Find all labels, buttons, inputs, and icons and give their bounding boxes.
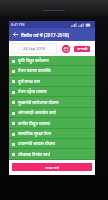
- button[interactable]: प्रधानमंत्री आवास योजना: [9, 139, 95, 149]
- button[interactable]: सामाजिक सुरक्षा पेंशन: [9, 129, 95, 139]
- button[interactable]: 24-Sep-2018: [11, 43, 57, 54]
- staticText: पेंशन उद्देश्य प्रकरण: [18, 89, 47, 95]
- staticText: मुख्यमंत्री स्वरोजगार योजना: [18, 100, 59, 106]
- button[interactable]: शौचालय निर्माण कार्य: [9, 149, 95, 160]
- button[interactable]: वापस जाएँ: [12, 163, 92, 171]
- staticText: सामाजिक सुरक्षा पेंशन: [18, 131, 52, 137]
- button[interactable]: पेंशन उद्देश्य प्रकरण: [9, 87, 95, 97]
- staticText: जानकारी: [77, 47, 88, 51]
- staticText: शौचालय निर्माण कार्य: [18, 152, 50, 158]
- button[interactable]: Back: [9, 28, 21, 41]
- staticText: आंगनवाड़ी आधारित कार्य: [18, 110, 56, 116]
- button[interactable]: जानकारी: [74, 46, 90, 52]
- staticText: वापस जाएँ: [45, 165, 59, 170]
- staticText: पेंशन प्रकरण उपलब्धि: [18, 68, 51, 74]
- button[interactable]: पूर्ण स्वच्छ ग्राम: [9, 76, 95, 87]
- button[interactable]: कृषि विद्युत कनेक्शन: [9, 56, 95, 66]
- staticText: 24-Sep-2018: [23, 46, 46, 51]
- staticText: वित्तीय वर्ष में (2017-2018): [21, 32, 70, 38]
- staticText: ग्रामीण विद्युत व्यवस्था: [18, 121, 51, 127]
- staticText: प्रधानमंत्री आवास योजना: [18, 141, 55, 147]
- button[interactable]: ग्रामीण विद्युत व्यवस्था: [9, 118, 95, 129]
- button[interactable]: आंगनवाड़ी आधारित कार्य: [9, 108, 95, 118]
- staticText: 8:47 PM: [11, 22, 25, 27]
- staticText: कृषि विद्युत कनेक्शन: [18, 58, 49, 64]
- staticText: पूर्ण स्वच्छ ग्राम: [18, 79, 40, 85]
- button[interactable]: पेंशन प्रकरण उपलब्धि: [9, 66, 95, 76]
- button[interactable]: मुख्यमंत्री स्वरोजगार योजना: [9, 97, 95, 108]
- button[interactable]: Pick date: [62, 45, 70, 53]
